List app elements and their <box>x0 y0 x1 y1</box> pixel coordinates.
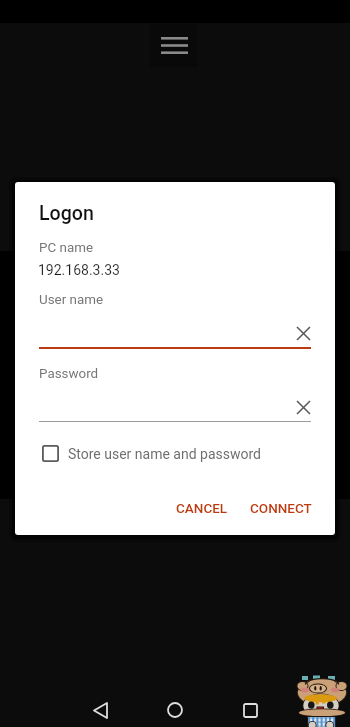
staticText: User name <box>39 292 104 308</box>
staticText: Password <box>39 366 99 382</box>
staticText: 192.168.3.33 <box>38 262 120 278</box>
staticText: Logon <box>39 202 94 225</box>
button[interactable]: Back <box>80 693 120 727</box>
button[interactable]: Open navigation menu <box>150 24 198 67</box>
button[interactable]: CONNECT <box>242 495 320 521</box>
staticText: Store user name and password <box>68 446 262 462</box>
button[interactable]: CANCEL <box>168 495 236 521</box>
button[interactable]: Clear text <box>290 320 317 347</box>
button[interactable]: Clear text <box>290 394 317 421</box>
button[interactable]: Home <box>155 693 195 727</box>
button[interactable]: Recent apps <box>230 693 270 727</box>
button[interactable]: Store user name and password <box>42 445 262 462</box>
staticText: PC name <box>39 240 94 256</box>
